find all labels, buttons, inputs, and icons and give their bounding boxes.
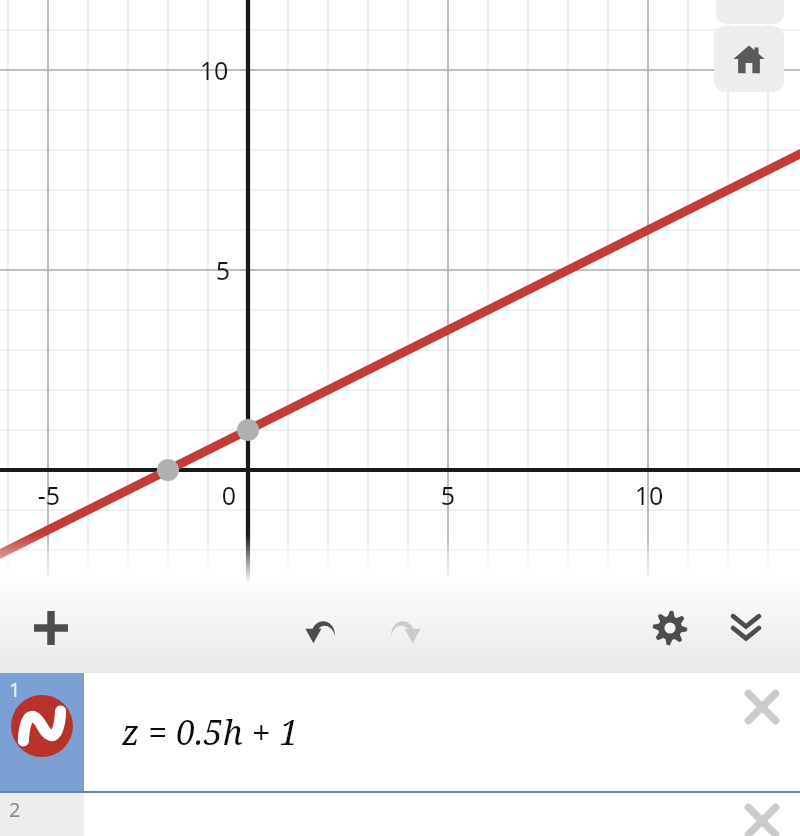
button[interactable]: Collapse: [715, 593, 777, 663]
button[interactable]: Settings: [639, 593, 701, 663]
button[interactable]: 2: [0, 793, 84, 836]
button[interactable]: Add expression: [20, 593, 82, 663]
button[interactable]: z = 0.5h + 1: [84, 673, 800, 791]
staticText: 5: [434, 478, 462, 512]
staticText: 10: [190, 53, 238, 87]
button[interactable]: Redo: [372, 593, 434, 663]
staticText: z = 0.5h + 1: [122, 709, 299, 755]
button[interactable]: Delete expression 2: [734, 799, 790, 836]
button[interactable]: Home: [714, 26, 784, 92]
staticText: 5: [208, 253, 238, 287]
button[interactable]: 1: [0, 673, 84, 791]
button[interactable]: Delete expression 2: [84, 793, 800, 836]
staticText: 2: [9, 796, 21, 823]
staticText: 1: [9, 676, 21, 703]
button[interactable]: Delete expression: [734, 679, 790, 735]
staticText: 10: [626, 478, 672, 512]
staticText: -5: [26, 478, 72, 512]
button[interactable]: Undo: [292, 593, 354, 663]
staticText: 0: [215, 478, 243, 512]
